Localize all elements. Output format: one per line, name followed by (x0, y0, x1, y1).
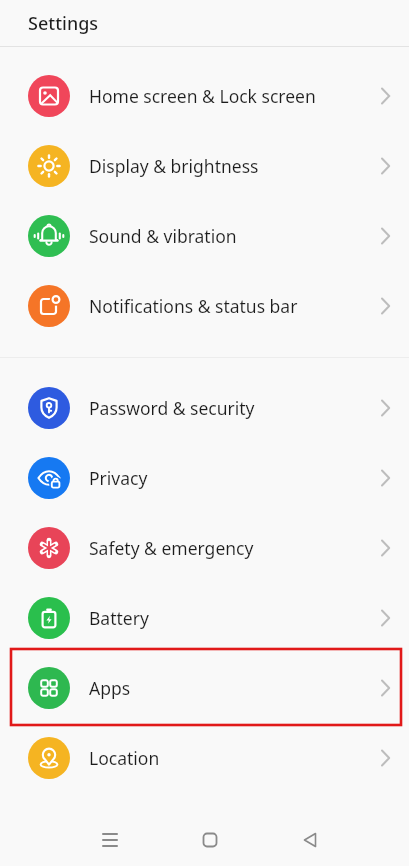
staticText: Settings (28, 11, 99, 36)
staticText: Sound & vibration (89, 224, 237, 248)
button[interactable]: Display & brightness (0, 131, 409, 201)
button[interactable]: Battery (0, 583, 409, 653)
staticText: Battery (89, 606, 149, 630)
staticText: Notifications & status bar (89, 294, 298, 318)
button[interactable]: Notifications & status bar (0, 271, 409, 341)
staticText: Location (89, 746, 160, 770)
staticText: Safety & emergency (89, 536, 254, 560)
staticText: Display & brightness (89, 154, 259, 178)
button[interactable] (60, 814, 160, 866)
button[interactable]: Password & security (0, 373, 409, 443)
button[interactable] (260, 814, 360, 866)
button[interactable]: Location (0, 723, 409, 793)
button[interactable]: Privacy (0, 443, 409, 513)
button[interactable]: Sound & vibration (0, 201, 409, 271)
button[interactable]: Apps (0, 653, 409, 723)
staticText: Apps (89, 676, 131, 700)
staticText: Privacy (89, 466, 148, 490)
button[interactable]: Home screen & Lock screen (0, 61, 409, 131)
staticText: Password & security (89, 396, 255, 420)
button[interactable] (160, 814, 260, 866)
button[interactable]: Safety & emergency (0, 513, 409, 583)
staticText: Home screen & Lock screen (89, 84, 316, 108)
